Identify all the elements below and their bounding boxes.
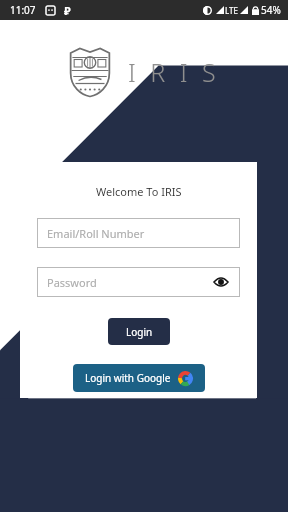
button[interactable]: Password xyxy=(37,267,240,297)
staticText: Login xyxy=(126,325,153,339)
staticText: I R I S xyxy=(128,55,220,89)
staticText: ₽ xyxy=(64,3,71,18)
staticText: Email/Roll Number xyxy=(47,226,145,241)
button[interactable]: Email/Roll Number xyxy=(37,218,240,248)
staticText: 54% xyxy=(261,3,281,17)
button[interactable]: Login xyxy=(108,318,170,345)
staticText: 11:07 xyxy=(10,3,36,17)
button[interactable]: Login with Google xyxy=(73,364,205,392)
staticText: Password xyxy=(47,275,97,290)
staticText: LTE xyxy=(225,5,238,16)
staticText: Welcome To IRIS xyxy=(96,184,182,199)
button[interactable]: Show password xyxy=(212,273,230,291)
staticText: Login with Google xyxy=(85,371,171,385)
